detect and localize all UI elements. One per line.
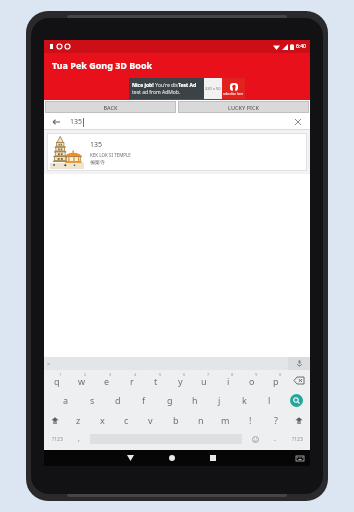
button[interactable]: 6 [168, 370, 192, 390]
button[interactable]: 7 [192, 370, 216, 390]
staticText: d [115, 394, 121, 406]
staticText: advertise here [223, 92, 244, 96]
button[interactable]: Recent apps [192, 450, 233, 466]
button[interactable]: 2 [69, 370, 94, 390]
button[interactable]: Voice input [288, 357, 310, 370]
staticText: c [124, 414, 129, 426]
staticText: e [104, 375, 110, 387]
staticText: KEK LOK SI TEMPLE [90, 152, 131, 158]
staticText: 2 [84, 372, 87, 377]
staticText: LUCKY PICK [228, 104, 259, 111]
staticText: m [221, 414, 230, 426]
button[interactable]: Shift [44, 410, 66, 430]
button[interactable]: f [131, 390, 157, 410]
staticText: n [198, 414, 204, 426]
staticText: y [178, 375, 183, 387]
button[interactable]: k [232, 390, 257, 410]
staticText: ? [274, 414, 278, 426]
button[interactable]: l [257, 390, 282, 410]
staticText: 8 [231, 372, 234, 377]
button[interactable]: j [207, 390, 232, 410]
staticText: ?123 [292, 436, 303, 443]
staticText: 6 [183, 372, 186, 377]
staticText: g [167, 394, 173, 406]
staticText: 1 [59, 372, 62, 377]
staticText: o [249, 375, 255, 387]
button[interactable]: Tua Pek Gong 3D Book [44, 53, 310, 76]
staticText: BACK [103, 104, 118, 111]
button[interactable]: , [70, 430, 88, 448]
staticText: 135 [70, 117, 83, 127]
button[interactable]: ?123 [44, 430, 70, 448]
staticText: a [63, 394, 69, 406]
button[interactable]: ?123 [284, 430, 310, 448]
button[interactable]: v [138, 410, 163, 430]
button[interactable]: Shift [288, 410, 310, 430]
staticText: 3 [109, 372, 112, 377]
staticText: w [78, 375, 86, 387]
button[interactable]: n [188, 410, 213, 430]
staticText: 極樂寺 [90, 159, 105, 165]
button[interactable]: Back [50, 116, 62, 128]
staticText: b [173, 414, 179, 426]
staticText: 0 [279, 372, 282, 377]
button[interactable]: b [163, 410, 188, 430]
staticText: , [78, 434, 80, 444]
button[interactable]: x [90, 410, 114, 430]
staticText: u [201, 375, 207, 387]
button[interactable]: 1 [44, 370, 69, 390]
button[interactable]: ! [238, 410, 263, 430]
staticText: v [148, 414, 153, 426]
staticText: j [218, 394, 221, 406]
button[interactable]: s [79, 390, 105, 410]
button[interactable]: 4 [119, 370, 144, 390]
staticText: . [274, 434, 276, 444]
staticText: 9 [255, 372, 258, 377]
staticText: x [100, 414, 105, 426]
staticText: 6:40 [296, 43, 306, 50]
button[interactable]: 8 [216, 370, 240, 390]
staticText: 4 [134, 372, 137, 377]
button[interactable]: Clear [292, 116, 304, 128]
button[interactable]: 3 [94, 370, 119, 390]
button[interactable]: BACK [45, 101, 176, 113]
staticText: q [54, 375, 60, 387]
staticText: 5 [159, 372, 162, 377]
staticText: 135 [90, 140, 103, 150]
button[interactable]: Back [110, 450, 151, 466]
button[interactable]: Keyboard [290, 450, 310, 466]
button[interactable]: . [266, 430, 284, 448]
button[interactable]: h [182, 390, 207, 410]
button[interactable]: g [157, 390, 182, 410]
staticText: ! [249, 414, 252, 426]
staticText: t [154, 375, 158, 387]
button[interactable]: z [66, 410, 90, 430]
staticText: ?123 [52, 436, 63, 443]
staticText: test ad from AdMob. [132, 89, 181, 96]
button[interactable]: 0 [264, 370, 288, 390]
staticText: You're dis [154, 82, 178, 89]
button[interactable]: c [114, 410, 138, 430]
button[interactable]: ? [263, 410, 288, 430]
staticText: r [130, 375, 134, 387]
button[interactable]: 135 [47, 133, 307, 171]
button[interactable]: LUCKY PICK [178, 101, 309, 113]
button[interactable]: m [213, 410, 238, 430]
staticText: 7 [207, 372, 210, 377]
button[interactable]: Search [282, 390, 310, 410]
staticText: Nice job! [132, 82, 154, 89]
button[interactable]: Backspace [288, 370, 310, 390]
button[interactable]: d [105, 390, 131, 410]
staticText: h [192, 394, 198, 406]
button[interactable]: Nice job! [129, 76, 245, 100]
staticText: s [90, 394, 95, 406]
button[interactable]: 5 [144, 370, 168, 390]
button[interactable]: a [53, 390, 79, 410]
staticText: l [268, 394, 271, 406]
button[interactable]: Emoji [244, 430, 266, 448]
button[interactable]: Home [151, 450, 192, 466]
staticText: i [227, 375, 230, 387]
staticText: Test Ad [178, 82, 197, 89]
button[interactable]: 9 [240, 370, 264, 390]
